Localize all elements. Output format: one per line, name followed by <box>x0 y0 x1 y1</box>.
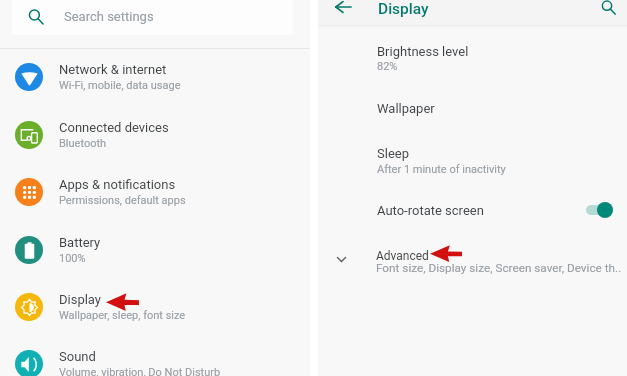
staticText: 100% <box>59 252 86 265</box>
staticText: Search settings <box>64 9 154 24</box>
staticText: Battery <box>59 235 101 250</box>
staticText: Apps & notifications <box>59 177 176 192</box>
button[interactable]: Search <box>597 0 619 18</box>
staticText: Sleep <box>377 146 409 161</box>
staticText: Wallpaper, sleep, font size <box>59 309 186 322</box>
button[interactable]: Battery <box>0 222 310 278</box>
button[interactable]: Sleep <box>318 146 627 182</box>
button[interactable]: Auto-rotate screen <box>318 201 627 225</box>
button[interactable]: Display <box>0 279 310 335</box>
staticText: Display <box>59 292 101 307</box>
staticText: Volume, vibration, Do Not Disturb <box>59 366 221 376</box>
staticText: Font size, Display size, Screen saver, D… <box>376 261 622 275</box>
staticText: Wi-Fi, mobile, data usage <box>59 79 181 92</box>
staticText: Wallpaper <box>377 101 435 116</box>
button[interactable]: Sound <box>0 336 310 376</box>
staticText: Brightness level <box>377 44 469 59</box>
staticText: Display <box>378 0 429 18</box>
button[interactable]: Network & internet <box>0 49 310 105</box>
button[interactable]: Brightness level <box>318 44 627 80</box>
staticText: Bluetooth <box>59 137 107 150</box>
button[interactable]: Back <box>332 0 354 18</box>
staticText: After 1 minute of inactivity <box>377 163 506 176</box>
staticText: Network & internet <box>59 62 167 77</box>
staticText: 82% <box>377 60 398 73</box>
staticText: Auto-rotate screen <box>377 203 484 218</box>
button[interactable]: Connected devices <box>0 107 310 163</box>
button[interactable]: Search settings <box>12 0 293 35</box>
staticText: Permissions, default apps <box>59 194 186 207</box>
staticText: Sound <box>59 349 96 364</box>
staticText: Advanced <box>376 249 429 263</box>
button[interactable]: Apps & notifications <box>0 164 310 220</box>
button[interactable]: Wallpaper <box>318 101 627 121</box>
button[interactable]: Advanced <box>318 247 627 283</box>
staticText: Connected devices <box>59 120 169 135</box>
